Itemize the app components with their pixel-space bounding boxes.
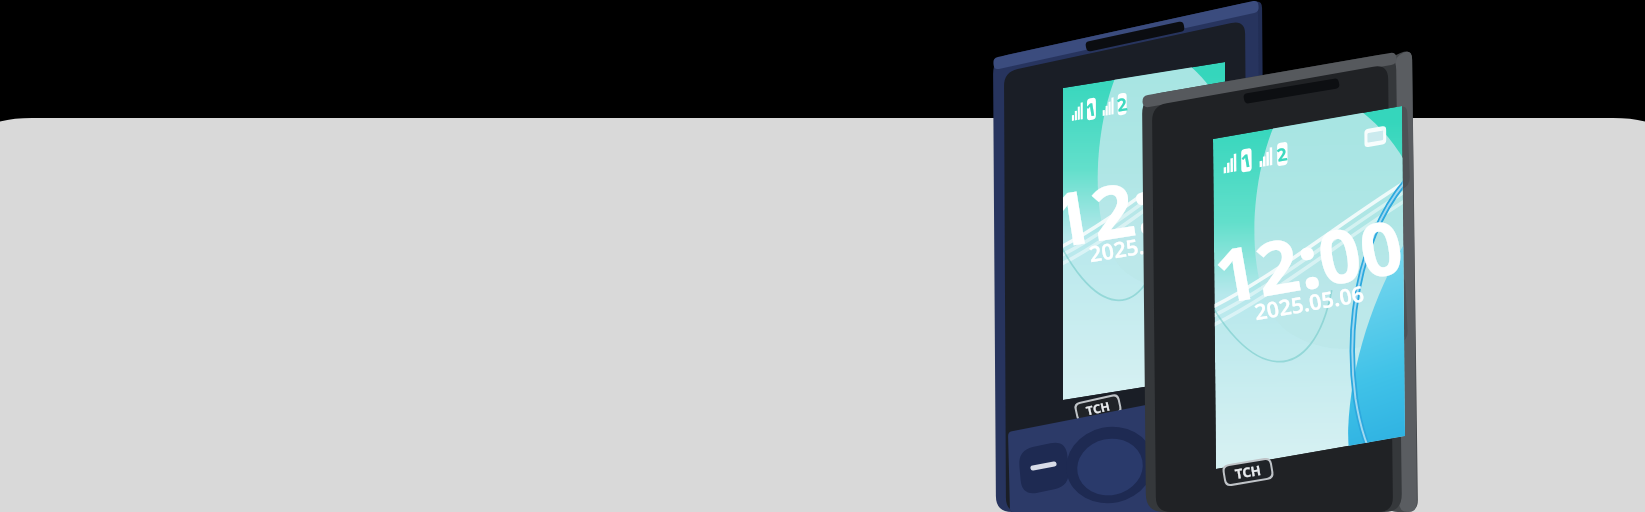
button[interactable]: TCH feature phone product banner (0, 0, 1645, 512)
